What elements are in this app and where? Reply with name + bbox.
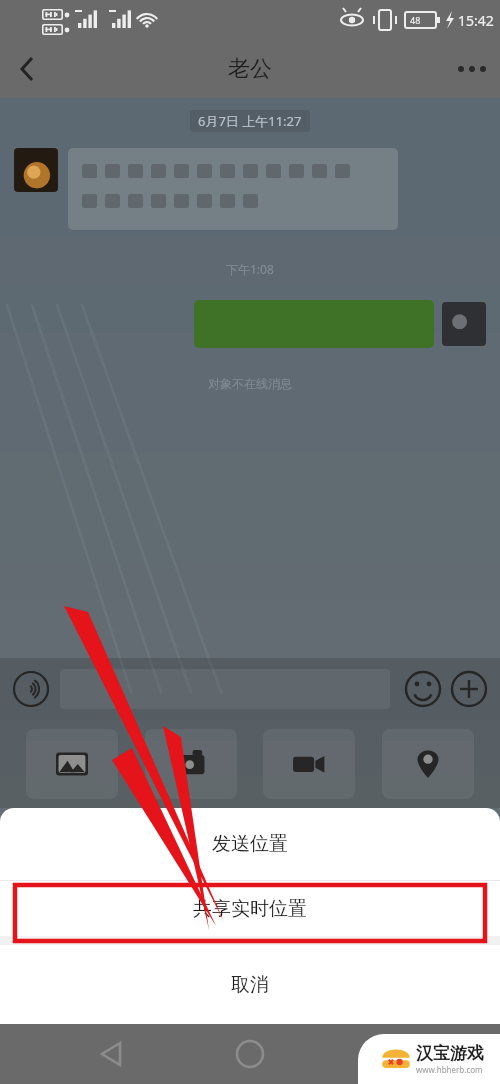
button[interactable]: More functions: [446, 666, 492, 712]
button[interactable]: Back: [0, 42, 54, 96]
staticText: www.hbherb.com: [416, 1064, 483, 1075]
button[interactable]: Video call: [263, 729, 355, 799]
staticText: 发送位置: [212, 832, 288, 856]
button[interactable]: [194, 300, 434, 348]
button[interactable]: Home: [222, 1026, 278, 1082]
staticText: 6月7日 上午11:27: [198, 112, 302, 130]
staticText: 老公: [228, 55, 272, 83]
button[interactable]: [60, 669, 390, 709]
staticText: 48: [410, 14, 421, 26]
button[interactable]: Photos: [26, 729, 118, 799]
staticText: 15:42: [458, 11, 494, 30]
button[interactable]: 取消: [0, 945, 500, 1024]
button[interactable]: [442, 302, 486, 346]
button[interactable]: Back: [83, 1026, 139, 1082]
button[interactable]: Recents: [361, 1026, 417, 1082]
button[interactable]: 共享实时位置: [0, 881, 500, 936]
button[interactable]: Voice input: [8, 666, 54, 712]
button[interactable]: Location: [382, 729, 474, 799]
staticText: 取消: [231, 973, 269, 997]
staticText: 对象不在线消息: [208, 376, 292, 391]
staticText: 汉宝游戏: [416, 1043, 484, 1064]
button[interactable]: More options: [444, 41, 500, 97]
button[interactable]: [68, 148, 398, 230]
staticText: 下午1:08: [226, 261, 274, 277]
button[interactable]: Camera: [145, 729, 237, 799]
button[interactable]: Emoji: [400, 666, 446, 712]
button[interactable]: [14, 148, 58, 192]
button[interactable]: 发送位置: [0, 808, 500, 880]
staticText: 共享实时位置: [193, 897, 307, 921]
